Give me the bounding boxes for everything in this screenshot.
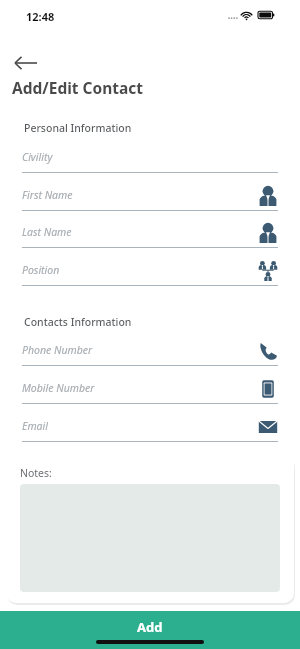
button[interactable]: First Name — [22, 183, 278, 211]
staticText: Contacts Information — [24, 315, 132, 329]
staticText: Civility — [22, 150, 53, 164]
staticText: Position — [22, 263, 60, 277]
button[interactable]: Position — [22, 258, 278, 286]
staticText: Last Name — [22, 225, 72, 239]
button[interactable]: Back — [10, 52, 42, 74]
other: Position — [258, 261, 278, 281]
staticText: Mobile Number — [22, 381, 95, 395]
other: Last name — [258, 223, 278, 243]
button[interactable]: Notes: — [6, 456, 294, 603]
button[interactable]: Email — [22, 414, 278, 442]
other: Phone number — [258, 341, 278, 361]
staticText: Phone Number — [22, 343, 93, 357]
button[interactable]: Phone Number — [22, 338, 278, 366]
staticText: First Name — [22, 188, 73, 202]
staticText: 12:48 — [26, 9, 55, 24]
button[interactable]: Last Name — [22, 220, 278, 248]
staticText: Add — [137, 618, 163, 636]
staticText: Add/Edit Contact — [12, 77, 144, 98]
other: Mobile number — [258, 379, 278, 399]
staticText: Notes: — [20, 466, 52, 480]
button[interactable]: Mobile Number — [22, 376, 278, 404]
staticText: Personal Information — [24, 121, 132, 135]
button[interactable]: Civility — [22, 145, 278, 173]
button[interactable]: Add — [0, 611, 300, 649]
other: First name — [258, 186, 278, 206]
other: Email — [258, 417, 278, 437]
staticText: Email — [22, 419, 48, 433]
